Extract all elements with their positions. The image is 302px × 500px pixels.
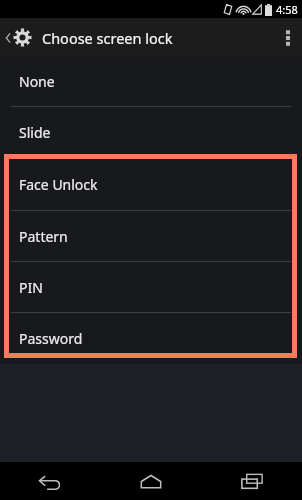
button[interactable]: More options (274, 18, 302, 57)
staticText: Face Unlock (19, 175, 98, 194)
button[interactable]: Pattern (0, 211, 302, 261)
button[interactable]: Face Unlock (0, 158, 302, 210)
staticText: 4:58 (276, 2, 298, 17)
button[interactable]: Home (100, 462, 201, 500)
button[interactable]: Password (0, 313, 302, 364)
button[interactable]: None (0, 57, 302, 106)
button[interactable]: PIN (0, 262, 302, 312)
button[interactable]: Recent apps (201, 462, 302, 500)
staticText: None (19, 72, 55, 91)
staticText: Pattern (19, 227, 68, 246)
staticText: Choose screen lock (42, 28, 173, 48)
button[interactable]: Slide (0, 107, 302, 157)
staticText: PIN (19, 278, 43, 297)
button[interactable]: Navigate up (0, 18, 35, 57)
staticText: Password (19, 329, 83, 348)
button[interactable]: Back (0, 462, 100, 500)
staticText: Slide (19, 123, 51, 142)
